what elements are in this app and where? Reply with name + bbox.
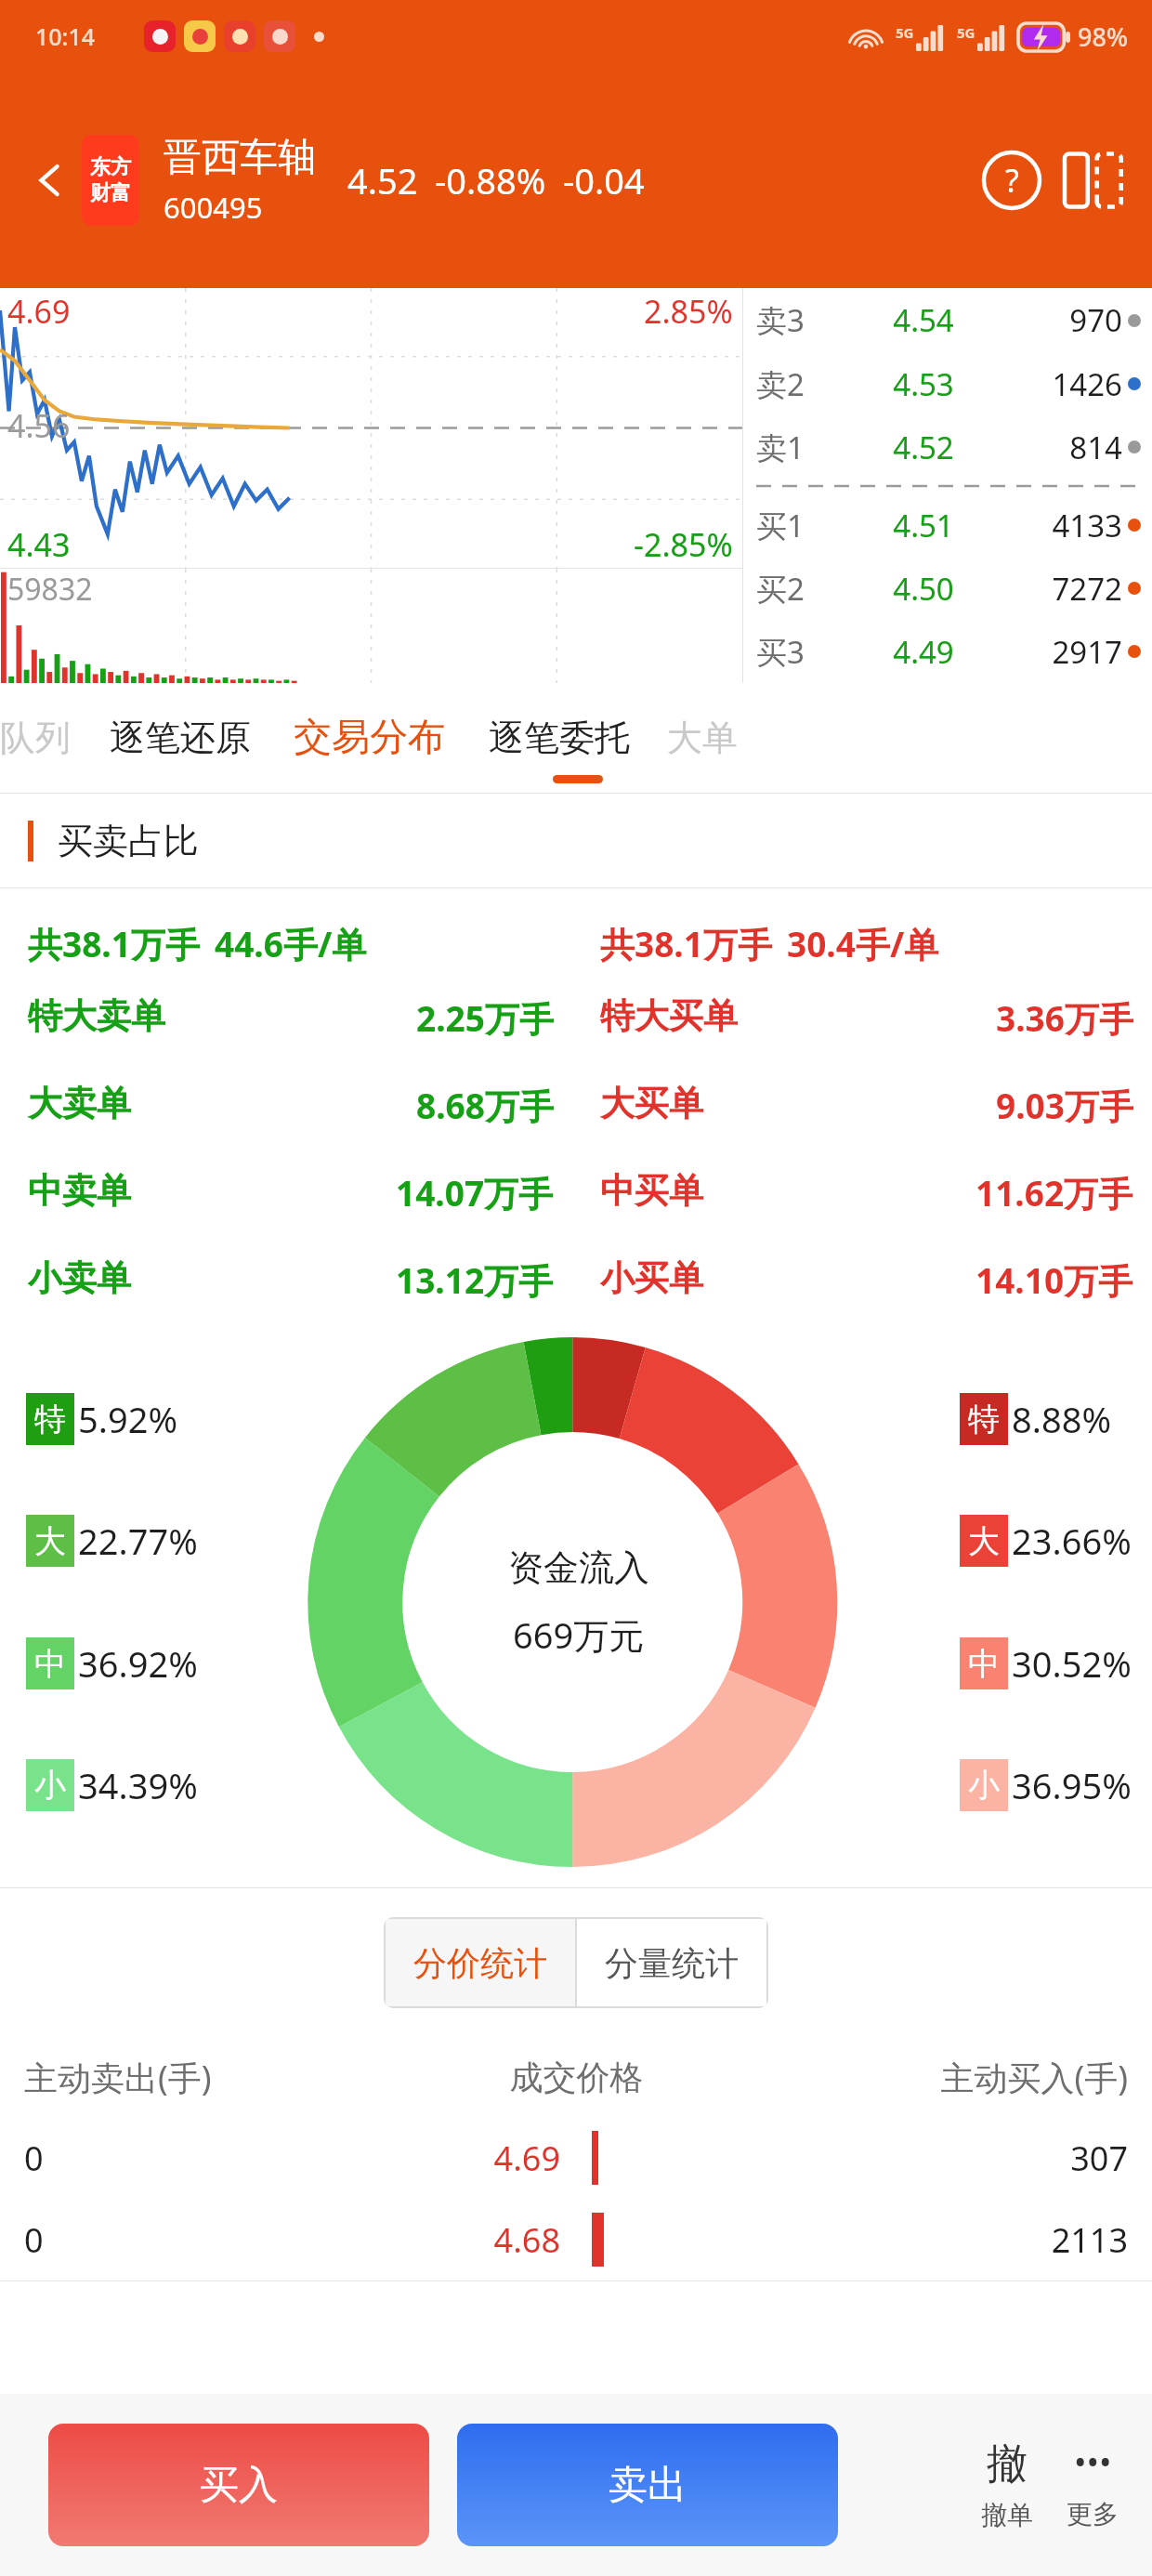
staticText: 9.03万手 bbox=[996, 1082, 1133, 1129]
staticText: 共38.1万手 bbox=[600, 920, 772, 967]
staticText: 5G bbox=[896, 23, 914, 42]
staticText: 1426 bbox=[1018, 363, 1122, 405]
button[interactable]: 卖3 bbox=[756, 288, 1141, 352]
staticText: 11.62万手 bbox=[975, 1169, 1133, 1216]
staticText: 财富 bbox=[90, 180, 131, 206]
staticText: 成交价格 bbox=[385, 2057, 768, 2098]
staticText: 8.88% bbox=[1012, 1395, 1111, 1443]
button[interactable]: 买3 bbox=[756, 620, 1141, 683]
button[interactable]: 大单 bbox=[667, 716, 738, 760]
staticText: 特大卖单 bbox=[28, 994, 165, 1038]
staticText: 8.68万手 bbox=[416, 1082, 554, 1129]
button[interactable]: 小 bbox=[26, 1759, 198, 1811]
staticText: 23.66% bbox=[1012, 1517, 1132, 1565]
button[interactable]: 队列 bbox=[0, 716, 71, 760]
staticText: 买3 bbox=[756, 631, 829, 673]
staticText: 4.52 bbox=[347, 156, 418, 204]
staticText: 4.69 bbox=[7, 290, 71, 333]
button[interactable]: 买2 bbox=[756, 557, 1141, 620]
staticText: 36.92% bbox=[78, 1639, 198, 1688]
button[interactable]: 逐笔委托 bbox=[489, 716, 630, 760]
staticText: 买卖占比 bbox=[58, 819, 199, 863]
button[interactable]: Back bbox=[24, 154, 76, 206]
staticText: 0 bbox=[24, 2217, 385, 2263]
staticText: 资金流入 bbox=[508, 1545, 649, 1590]
button[interactable]: 交易分布 bbox=[294, 714, 446, 762]
staticText: 4.69 bbox=[385, 2136, 560, 2181]
button[interactable]: 大 bbox=[26, 1515, 198, 1567]
staticText: 59832 bbox=[7, 569, 93, 610]
staticText: 4.49 bbox=[829, 631, 1018, 673]
staticText: 中 bbox=[34, 1644, 66, 1684]
button[interactable]: 卖1 bbox=[756, 415, 1141, 479]
staticText: 更多 bbox=[1067, 2498, 1119, 2530]
staticText: 4.51 bbox=[829, 505, 1018, 546]
staticText: 买1 bbox=[756, 505, 829, 546]
button[interactable]: 卖2 bbox=[756, 352, 1141, 415]
staticText: ? bbox=[1005, 159, 1019, 202]
staticText: -0.88% bbox=[435, 156, 546, 204]
staticText: 2917 bbox=[1018, 631, 1122, 673]
staticText: 撤单 bbox=[981, 2499, 1033, 2531]
staticText: 4.43 bbox=[7, 523, 71, 566]
staticText: 中卖单 bbox=[28, 1169, 131, 1213]
staticText: 307 bbox=[768, 2136, 1128, 2181]
staticText: 2.85% bbox=[644, 290, 733, 333]
staticText: 4133 bbox=[1018, 505, 1122, 546]
button[interactable]: 0 bbox=[0, 2117, 1152, 2199]
staticText: 交易分布 bbox=[294, 714, 446, 762]
staticText: 晋西车轴 bbox=[164, 134, 316, 182]
staticText: 大 bbox=[968, 1521, 1000, 1561]
staticText: 大 bbox=[34, 1521, 66, 1561]
button[interactable]: 卖出 bbox=[457, 2424, 838, 2546]
staticText: 东方 bbox=[90, 154, 131, 180]
staticText: 中 bbox=[968, 1644, 1000, 1684]
staticText: 5G bbox=[957, 23, 975, 42]
button[interactable]: More bbox=[1067, 2439, 1119, 2530]
staticText: 36.95% bbox=[1012, 1761, 1132, 1809]
staticText: 4.52 bbox=[829, 427, 1018, 468]
staticText: 14.07万手 bbox=[396, 1169, 554, 1216]
staticText: 44.6手/单 bbox=[215, 920, 367, 967]
staticText: 2.25万手 bbox=[416, 994, 554, 1042]
button[interactable]: 分量统计 bbox=[577, 1919, 766, 2006]
staticText: 0 bbox=[24, 2136, 385, 2181]
button[interactable]: 中 bbox=[960, 1637, 1132, 1689]
button[interactable]: 大 bbox=[960, 1515, 1132, 1567]
button[interactable]: 特 bbox=[960, 1393, 1111, 1445]
staticText: 特 bbox=[34, 1400, 66, 1439]
button[interactable]: 买1 bbox=[756, 493, 1141, 557]
button[interactable]: 小 bbox=[960, 1759, 1132, 1811]
staticText: 特大买单 bbox=[600, 994, 738, 1038]
button[interactable]: 逐笔还原 bbox=[110, 716, 251, 760]
staticText: 814 bbox=[1018, 427, 1122, 468]
button[interactable]: 特 bbox=[26, 1393, 177, 1445]
staticText: -2.85% bbox=[634, 523, 733, 566]
button[interactable]: 买入 bbox=[48, 2424, 429, 2546]
staticText: 大卖单 bbox=[28, 1082, 131, 1125]
staticText: 14.10万手 bbox=[975, 1256, 1133, 1304]
staticText: 卖出 bbox=[609, 2461, 687, 2510]
staticText: 小 bbox=[34, 1766, 66, 1806]
staticText: 22.77% bbox=[78, 1517, 198, 1565]
button[interactable]: 中 bbox=[26, 1637, 198, 1689]
staticText: 4.68 bbox=[385, 2217, 560, 2263]
staticText: 主动买入(手) bbox=[768, 2055, 1128, 2100]
staticText: 2113 bbox=[768, 2217, 1128, 2263]
staticText: 买2 bbox=[756, 568, 829, 610]
staticText: 669万元 bbox=[513, 1610, 645, 1659]
staticText: 分价统计 bbox=[413, 1942, 547, 1984]
staticText: 卖1 bbox=[756, 427, 829, 468]
button[interactable]: 撤 bbox=[981, 2438, 1033, 2531]
button[interactable]: 东方 bbox=[82, 135, 139, 226]
staticText: 撤 bbox=[987, 2438, 1028, 2490]
button[interactable]: Share bbox=[1059, 146, 1128, 215]
button[interactable]: 0 bbox=[0, 2199, 1152, 2280]
button[interactable]: 分价统计 bbox=[386, 1919, 575, 2006]
staticText: 买入 bbox=[200, 2461, 278, 2510]
staticText: 3.36万手 bbox=[996, 994, 1133, 1042]
button[interactable]: Help bbox=[977, 146, 1046, 215]
staticText: 小买单 bbox=[600, 1256, 703, 1300]
staticText: 7272 bbox=[1018, 568, 1122, 610]
staticText: 小 bbox=[968, 1766, 1000, 1806]
